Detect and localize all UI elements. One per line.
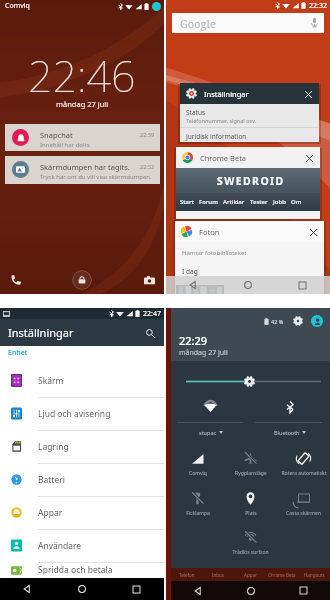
button[interactable]: Ljud och avisering [0, 397, 164, 430]
staticText: Tryck här om du vill visa skärmdumpen. [40, 173, 152, 181]
button[interactable]: Flygplansläge [224, 450, 277, 484]
button[interactable]: Inställningar [180, 83, 319, 142]
staticText: Appar [38, 507, 63, 519]
button[interactable]: Snapchat [5, 124, 160, 151]
staticText: Chrome Beta [268, 572, 296, 578]
staticText: 22:32 [140, 163, 155, 170]
button[interactable]: Settings [292, 315, 304, 327]
staticText: Bluetooth [274, 429, 300, 436]
button[interactable]: Plats [224, 490, 277, 524]
button[interactable]: Home [224, 581, 277, 600]
button[interactable]: Home [54, 578, 109, 600]
staticText: Comviq [189, 470, 207, 477]
staticText: Jobb [273, 198, 286, 206]
staticText: Hangouts [304, 572, 325, 578]
staticText: SWEDROID [217, 174, 285, 188]
staticText: Tester [250, 198, 268, 206]
staticText: Skärm [38, 375, 64, 387]
staticText: Inställningar [8, 325, 74, 340]
button[interactable]: Casta skärmen [277, 490, 330, 524]
staticText: Enhet [8, 348, 28, 358]
button[interactable]: Ficklampa [171, 490, 224, 524]
button[interactable]: Spridda och betala [0, 562, 164, 578]
staticText: Telefon [179, 572, 195, 578]
button[interactable]: Batteri [0, 463, 164, 496]
staticText: 22:29 [179, 333, 208, 348]
button[interactable]: Home [220, 276, 275, 294]
staticText: Start [180, 198, 194, 206]
staticText: stupac [199, 429, 217, 436]
staticText: Innehåll har dolts [40, 141, 90, 149]
staticText: Skärmdumpen har tagits. [40, 162, 130, 172]
button[interactable]: Phone [8, 272, 24, 288]
button[interactable]: User [152, 2, 161, 11]
button[interactable]: Search [143, 326, 157, 340]
staticText: 22:39 [140, 131, 155, 138]
staticText: måndag 27 juli [56, 99, 109, 109]
button[interactable]: Rotera automatiskt [277, 450, 330, 484]
staticText: Rotera automatiskt [281, 470, 327, 477]
button[interactable]: Close Chrome Beta [304, 153, 314, 163]
staticText: måndag 27 juli [179, 348, 228, 358]
button[interactable]: Bluetooth [250, 427, 330, 437]
button[interactable]: Google [172, 13, 324, 33]
staticText: Artiklar [223, 198, 245, 206]
staticText: Inställningar [204, 89, 249, 99]
staticText: Lagring [38, 441, 69, 453]
staticText: Appar [244, 572, 257, 578]
button[interactable]: Recents [109, 578, 164, 600]
button[interactable]: Chrome Beta [266, 568, 298, 581]
button[interactable]: Skärm [0, 364, 164, 397]
button[interactable]: Camera [141, 272, 157, 288]
staticText: Forum [199, 198, 218, 206]
staticText: Batteri [38, 474, 65, 486]
staticText: Om [291, 198, 302, 206]
button[interactable]: Close Inställningar [303, 89, 313, 99]
staticText: 22:46 [28, 46, 136, 105]
staticText: 42 % [271, 318, 284, 325]
button[interactable]: Recents [275, 276, 330, 294]
staticText: Inbox [212, 572, 225, 578]
button[interactable]: stupac [171, 427, 250, 437]
button[interactable]: Recents [277, 581, 330, 600]
staticText: Google [180, 16, 216, 31]
button[interactable]: Unlock [72, 270, 92, 290]
staticText: Flygplansläge [234, 470, 267, 477]
button[interactable]: Inbox [202, 568, 234, 581]
button[interactable]: Foton [175, 221, 324, 294]
staticText: Plats [245, 510, 257, 517]
button[interactable]: Hangouts [298, 568, 330, 581]
button[interactable]: Appar [0, 496, 164, 529]
button[interactable]: Back [0, 578, 54, 600]
staticText: Status [186, 108, 206, 117]
staticText: Hämtar fotobiblioteket [182, 249, 247, 257]
button[interactable]: Close Foton [308, 227, 318, 237]
staticText: Ficklampa [186, 510, 210, 517]
button[interactable]: Trådlös surfzon [224, 529, 277, 563]
staticText: Casta skärmen [286, 510, 321, 517]
staticText: 22:32 [309, 1, 327, 11]
button[interactable]: Lagring [0, 430, 164, 463]
button[interactable]: Back [171, 581, 224, 600]
button[interactable]: Skärmdumpen har tagits. [5, 156, 160, 184]
staticText: Ljud och avisering [38, 408, 111, 420]
staticText: Telefonnummer, signal osv. [186, 117, 257, 124]
staticText: Foton [199, 227, 220, 237]
button[interactable]: Chrome Beta [176, 147, 320, 219]
staticText: Användare [38, 540, 82, 552]
staticText: Trådlös surfzon [232, 549, 269, 556]
button[interactable]: Användare [0, 529, 164, 562]
button[interactable]: Comviq [171, 450, 224, 484]
staticText: Snapchat [40, 130, 73, 140]
button[interactable]: Back [166, 276, 220, 294]
staticText: 22:47 [143, 309, 161, 319]
staticText: Juridisk information [186, 132, 247, 141]
staticText: Spridda och betala [38, 564, 113, 576]
button[interactable]: Telefon [171, 568, 202, 581]
button[interactable]: Appar [234, 568, 266, 581]
button[interactable]: User [311, 315, 323, 327]
staticText: Chrome Beta [200, 153, 247, 163]
staticText: I dag [182, 267, 198, 276]
staticText: Comviq [5, 1, 30, 11]
